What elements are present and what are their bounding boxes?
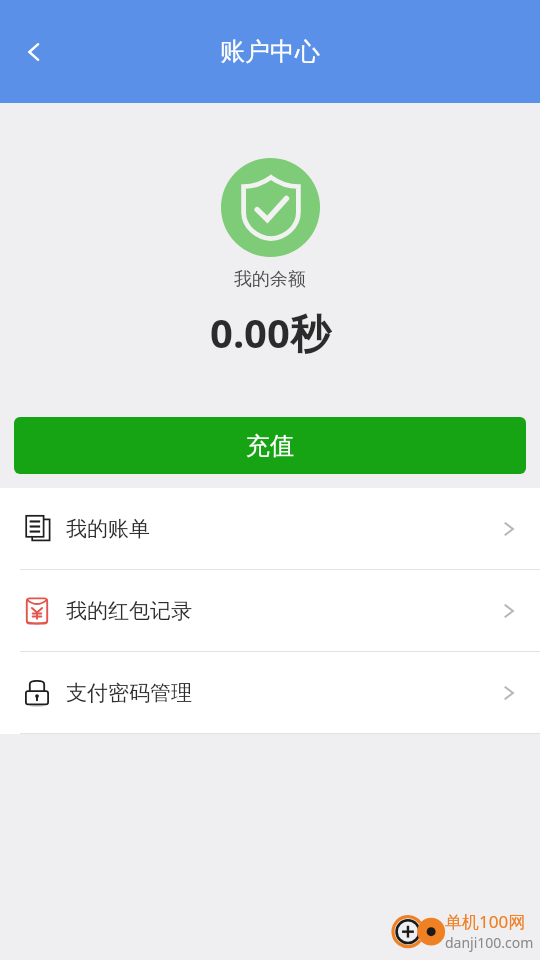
staticText: 我的账单	[66, 516, 150, 542]
staticText: danji100.com	[445, 933, 534, 952]
button[interactable]: Back	[8, 26, 60, 78]
button[interactable]: 我的账单	[0, 488, 540, 569]
staticText: 我的余额	[234, 268, 306, 291]
staticText: 账户中心	[220, 36, 320, 67]
staticText: 充值	[246, 431, 294, 461]
staticText: 0.00秒	[210, 305, 330, 360]
staticText: 支付密码管理	[66, 680, 192, 706]
staticText: 我的红包记录	[66, 598, 192, 624]
staticText: 单机100网	[445, 910, 526, 933]
button[interactable]: 支付密码管理	[0, 652, 540, 733]
button[interactable]: 我的红包记录	[0, 570, 540, 651]
button[interactable]: 充值	[14, 417, 526, 474]
